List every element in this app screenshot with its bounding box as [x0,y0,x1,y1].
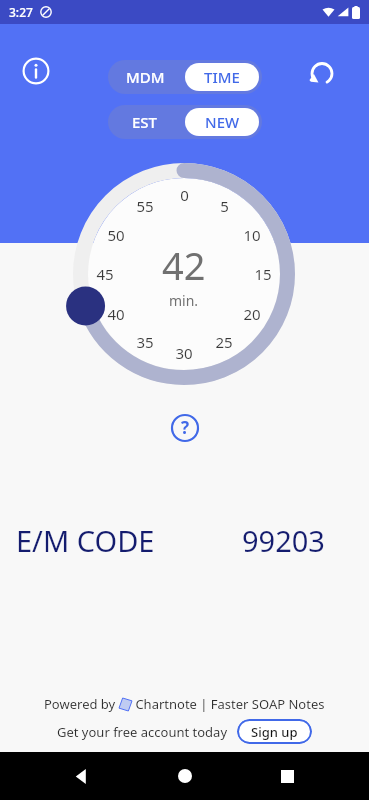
button[interactable]: Undo [307,57,337,87]
button[interactable]: Sign up [237,719,312,744]
staticText: Chartnote | Faster SOAP Notes [132,695,325,713]
staticText: EST [132,112,158,132]
staticText: 50 [107,225,125,245]
button[interactable]: MDM [108,60,262,94]
staticText: NEW [205,112,240,132]
button[interactable]: Home [165,756,205,796]
button[interactable]: EST [108,105,262,139]
staticText: MDM [126,67,165,87]
button[interactable]: Recent apps [267,756,307,796]
staticText: Sign up [251,723,298,741]
staticText: 15 [254,264,272,284]
staticText: 42 [162,239,206,291]
button[interactable]: Time dial, 42 minutes [69,159,299,389]
staticText: 55 [136,196,154,216]
staticText: 45 [96,264,114,284]
staticText: TIME [204,67,240,87]
staticText: min. [169,291,199,310]
staticText: Get your free account today [57,723,228,741]
staticText: 40 [107,304,125,324]
staticText: 25 [215,332,233,352]
staticText: 35 [136,332,154,352]
staticText: 5 [220,196,229,216]
staticText: E/M CODE [16,521,155,560]
staticText: 0 [180,185,189,205]
button[interactable]: Back [62,756,102,796]
button[interactable]: Information [22,57,50,85]
button[interactable]: Help [169,412,201,444]
staticText: Powered by [44,695,119,713]
staticText: 20 [243,304,261,324]
staticText: ? [181,416,190,439]
staticText: 10 [243,225,261,245]
staticText: 3:27 [9,4,33,20]
staticText: 30 [175,343,193,363]
staticText: 99203 [242,521,325,560]
